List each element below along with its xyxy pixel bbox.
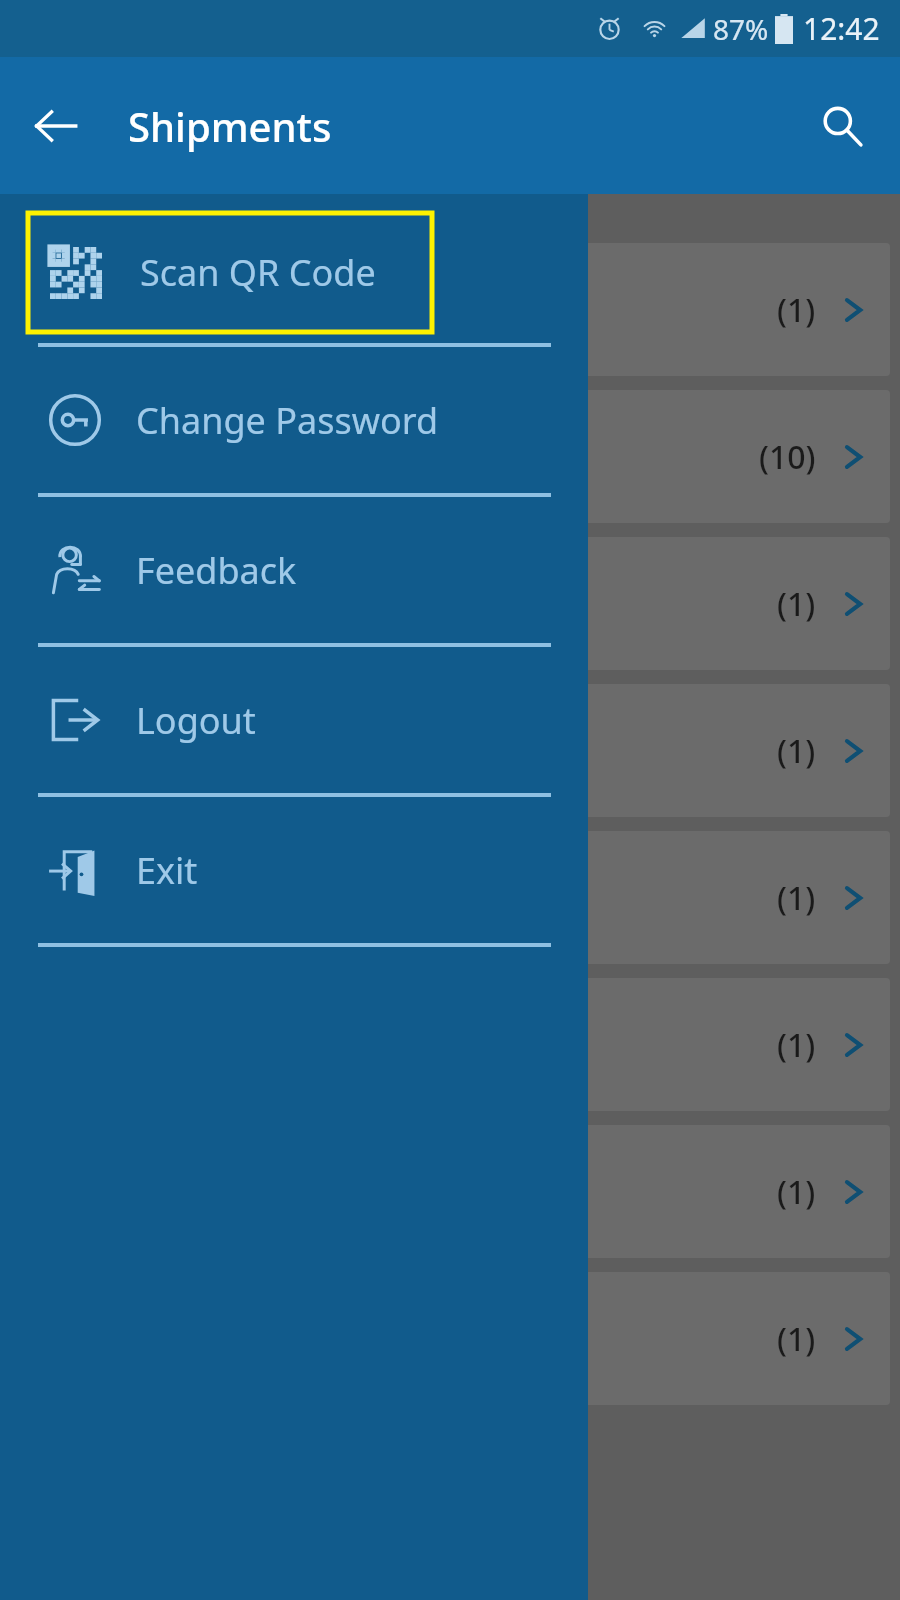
staticText: Feedback <box>136 546 297 595</box>
staticText: Change Password <box>136 396 439 445</box>
button[interactable]: Logout <box>0 647 588 793</box>
staticText: (1) <box>777 582 816 626</box>
staticText: 12:42 <box>803 8 880 49</box>
button[interactable]: (10) <box>10 390 890 523</box>
staticText: (1) <box>777 288 816 332</box>
button[interactable]: (1) <box>10 537 890 670</box>
staticText: (10) <box>759 435 816 479</box>
button[interactable]: Back <box>22 92 90 160</box>
staticText: Exit <box>136 846 198 895</box>
staticText: (1) <box>777 1170 816 1214</box>
button[interactable]: (1) <box>10 831 890 964</box>
staticText: Logout <box>136 696 256 745</box>
staticText: (1) <box>777 729 816 773</box>
staticText: (1) <box>777 876 816 920</box>
button[interactable]: (1) <box>10 978 890 1111</box>
staticText: Scan QR Code <box>140 248 376 297</box>
button[interactable]: (1) <box>10 1272 890 1405</box>
button[interactable]: (1) <box>10 243 890 376</box>
staticText: Shipments <box>128 99 332 153</box>
button[interactable]: (1) <box>10 684 890 817</box>
button[interactable]: Change Password <box>0 347 588 493</box>
button[interactable]: Scan QR Code <box>28 213 432 332</box>
staticText: (1) <box>777 1023 816 1067</box>
button[interactable]: Exit <box>0 797 588 943</box>
staticText: (1) <box>777 1317 816 1361</box>
button[interactable]: (1) <box>10 1125 890 1258</box>
button[interactable]: Search <box>808 92 876 160</box>
staticText: 87% <box>713 10 769 48</box>
button[interactable]: Feedback <box>0 497 588 643</box>
